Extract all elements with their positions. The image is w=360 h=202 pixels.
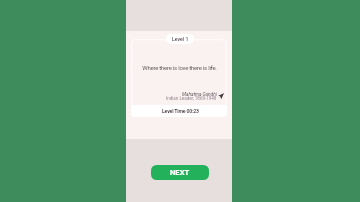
staticText: Level 1 xyxy=(172,36,189,42)
button[interactable]: Share xyxy=(217,92,225,100)
staticText: Mahatma Gandhi xyxy=(182,92,217,98)
button[interactable]: Level 1 xyxy=(166,34,194,44)
staticText: Where there is love there is life. xyxy=(142,64,217,71)
staticText: NEXT xyxy=(170,168,190,177)
staticText: Level Time 00:23 xyxy=(162,108,199,114)
button[interactable]: NEXT xyxy=(151,165,209,180)
staticText: Indian Leader, 1869-1948 xyxy=(166,96,217,101)
